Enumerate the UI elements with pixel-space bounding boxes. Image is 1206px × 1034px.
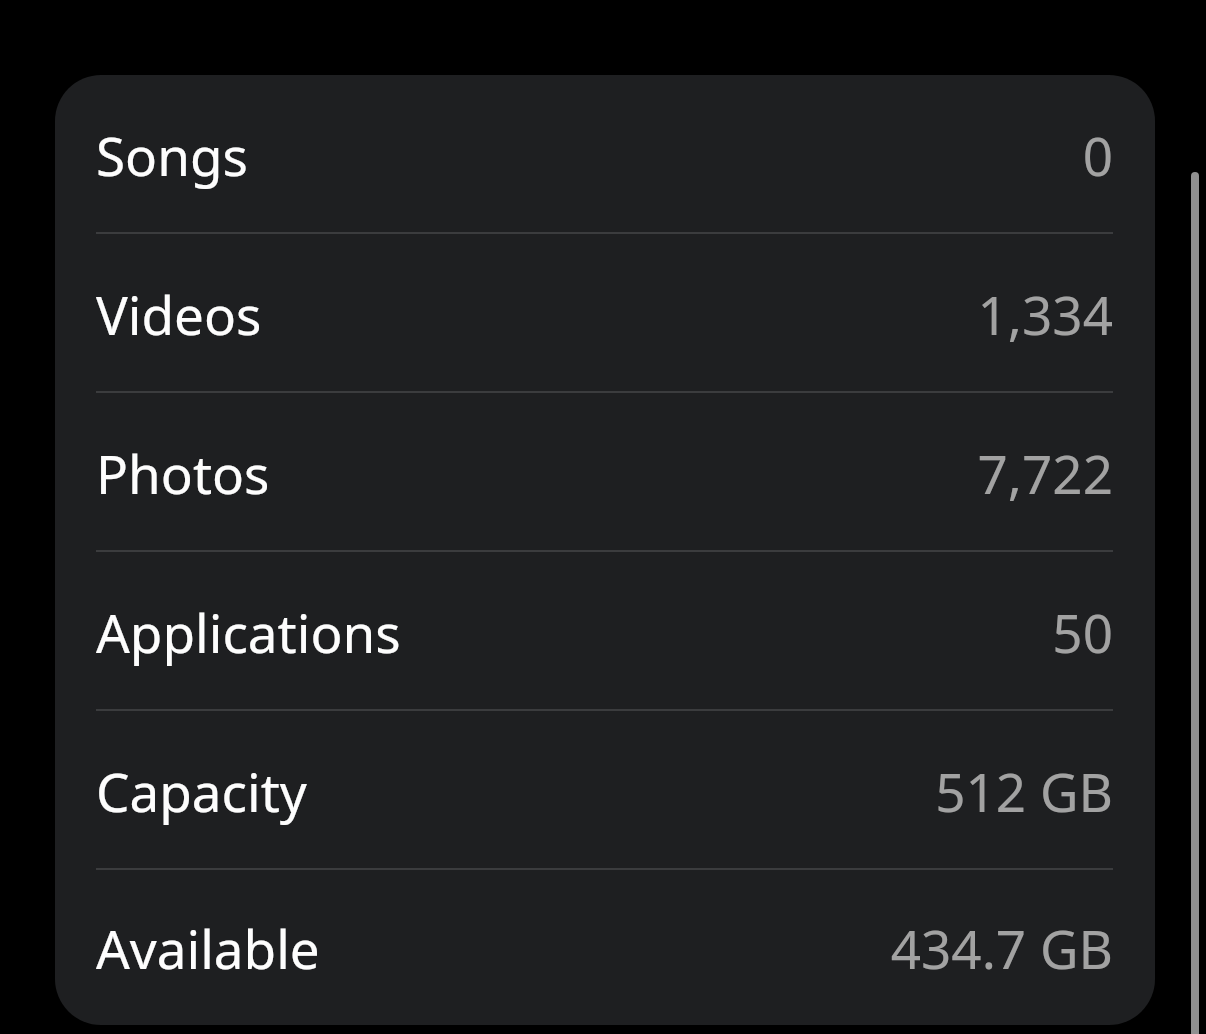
- button[interactable]: Songs: [55, 75, 1155, 234]
- staticText: 512 GB: [935, 755, 1113, 827]
- staticText: Photos: [96, 437, 270, 509]
- staticText: Videos: [96, 278, 262, 350]
- staticText: 434.7 GB: [890, 912, 1113, 984]
- staticText: 50: [1052, 596, 1113, 668]
- staticText: 1,334: [977, 278, 1113, 350]
- staticText: Capacity: [96, 755, 307, 827]
- staticText: 7,722: [977, 437, 1113, 509]
- staticText: Songs: [96, 119, 248, 191]
- staticText: Available: [96, 912, 320, 984]
- staticText: 0: [1082, 119, 1113, 191]
- staticText: Applications: [96, 596, 401, 668]
- button[interactable]: Videos: [55, 234, 1155, 393]
- button[interactable]: Photos: [55, 393, 1155, 552]
- button[interactable]: Available: [55, 870, 1155, 1025]
- button[interactable]: Applications: [55, 552, 1155, 711]
- button[interactable]: Capacity: [55, 711, 1155, 870]
